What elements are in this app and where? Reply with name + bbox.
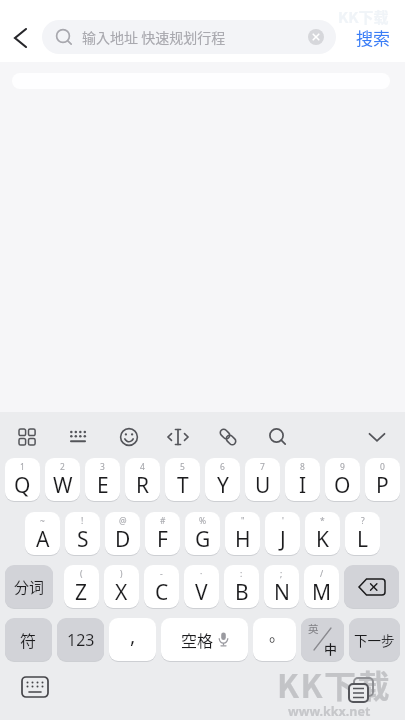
button[interactable]: - <box>144 565 179 608</box>
staticText: ~ <box>40 515 45 527</box>
staticText: KK下载 <box>277 661 391 707</box>
staticText: J <box>280 525 286 554</box>
staticText: 中 <box>324 639 338 658</box>
button[interactable] <box>344 565 399 608</box>
button[interactable] <box>8 418 46 456</box>
button[interactable]: : <box>224 565 259 608</box>
button[interactable]: / <box>304 565 339 608</box>
staticText: , <box>130 622 136 649</box>
button[interactable]: 0 <box>365 458 400 501</box>
staticText: : <box>240 568 243 580</box>
button[interactable]: 分词 <box>5 565 53 608</box>
staticText: ( <box>80 568 83 580</box>
button[interactable]: 2 <box>45 458 80 501</box>
button[interactable]: , <box>109 618 156 661</box>
staticText: W <box>53 471 73 500</box>
staticText: 6 <box>220 461 225 473</box>
staticText: 。 <box>269 622 286 645</box>
button[interactable]: " <box>225 512 260 555</box>
staticText: 英 <box>308 621 319 636</box>
staticText: F <box>157 525 168 554</box>
staticText: * <box>320 515 325 527</box>
button[interactable]: ) <box>104 565 139 608</box>
button[interactable]: 符 <box>5 618 52 661</box>
staticText: 搜索 <box>356 25 390 50</box>
staticText: 输入地址 快速规划行程 <box>82 27 226 47</box>
button[interactable] <box>6 22 38 54</box>
button[interactable]: # <box>145 512 180 555</box>
button[interactable]: 5 <box>165 458 200 501</box>
staticText: T <box>177 471 189 500</box>
button[interactable]: 4 <box>125 458 160 501</box>
staticText: 5 <box>180 461 185 473</box>
button[interactable] <box>59 418 97 456</box>
button[interactable]: @ <box>105 512 140 555</box>
staticText: ? <box>361 515 365 527</box>
staticText: 下一步 <box>354 630 395 650</box>
staticText: www.kkx.net <box>288 703 371 720</box>
staticText: 1 <box>20 461 25 473</box>
button[interactable]: 1 <box>5 458 40 501</box>
button[interactable] <box>18 672 52 702</box>
button[interactable] <box>308 29 324 45</box>
staticText: B <box>235 578 249 607</box>
button[interactable]: 7 <box>245 458 280 501</box>
staticText: " <box>241 515 245 527</box>
staticText: Y <box>217 471 229 500</box>
button[interactable]: 9 <box>325 458 360 501</box>
staticText: @ <box>119 515 127 527</box>
button[interactable]: % <box>185 512 220 555</box>
staticText: D <box>115 525 131 554</box>
staticText: I <box>299 471 307 500</box>
staticText: A <box>36 525 50 554</box>
button[interactable]: ? <box>345 512 380 555</box>
staticText: ! <box>81 515 84 527</box>
staticText: C <box>155 578 169 607</box>
staticText: 0 <box>380 461 385 473</box>
staticText: ; <box>280 568 283 580</box>
button[interactable]: 8 <box>285 458 320 501</box>
button[interactable] <box>259 418 297 456</box>
button[interactable]: ( <box>64 565 99 608</box>
button[interactable] <box>358 418 396 456</box>
button[interactable] <box>110 418 148 456</box>
button[interactable]: · <box>184 565 219 608</box>
staticText: 7 <box>260 461 265 473</box>
staticText: M <box>312 578 332 607</box>
button[interactable]: 。 <box>253 618 296 661</box>
button[interactable] <box>159 418 197 456</box>
staticText: N <box>274 578 290 607</box>
staticText: 3 <box>100 461 105 473</box>
staticText: 符 <box>20 628 37 651</box>
button[interactable]: 下一步 <box>349 618 400 661</box>
button[interactable]: ' <box>265 512 300 555</box>
staticText: X <box>115 578 128 607</box>
button[interactable]: * <box>305 512 340 555</box>
staticText: ' <box>282 515 284 527</box>
staticText: 4 <box>140 461 145 473</box>
staticText: V <box>195 578 208 607</box>
button[interactable]: 搜索 <box>344 18 402 56</box>
button[interactable] <box>209 418 247 456</box>
button[interactable]: 输入地址 快速规划行程 <box>42 20 336 54</box>
staticText: 2 <box>60 461 65 473</box>
staticText: K <box>316 525 329 554</box>
staticText: G <box>195 525 211 554</box>
button[interactable]: ~ <box>25 512 60 555</box>
staticText: Z <box>75 578 88 607</box>
staticText: R <box>136 471 150 500</box>
staticText: # <box>160 515 166 527</box>
staticText: E <box>97 471 109 500</box>
button[interactable]: 3 <box>85 458 120 501</box>
staticText: / <box>320 568 324 580</box>
button[interactable]: ! <box>65 512 100 555</box>
button[interactable]: ; <box>264 565 299 608</box>
staticText: ) <box>120 568 123 580</box>
button[interactable]: 空格 <box>161 618 248 661</box>
button[interactable]: 英 <box>301 618 344 661</box>
staticText: S <box>77 525 89 554</box>
button[interactable]: 6 <box>205 458 240 501</box>
staticText: Q <box>14 471 31 500</box>
staticText: 空格 <box>181 628 214 651</box>
button[interactable]: 123 <box>57 618 104 661</box>
